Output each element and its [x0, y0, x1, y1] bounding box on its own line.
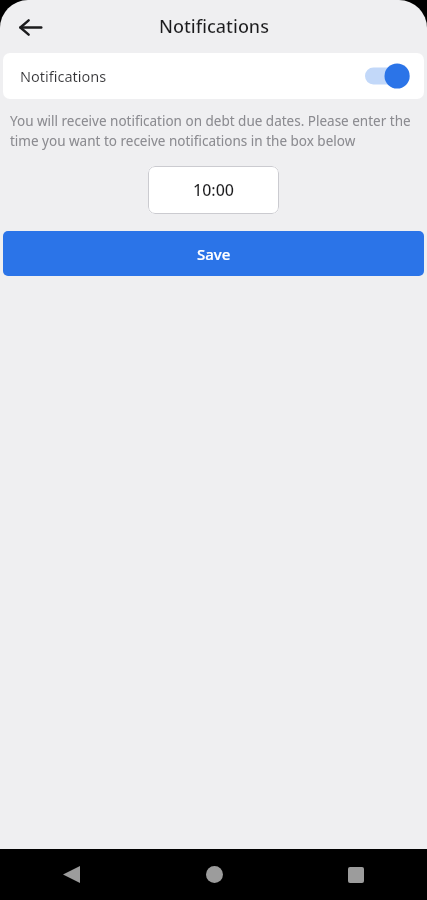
staticText: You will receive notification on debt du… — [10, 112, 415, 150]
button[interactable]: Save — [3, 231, 424, 276]
button[interactable]: 10:00 — [148, 166, 279, 214]
button[interactable]: Recent apps — [285, 849, 427, 900]
staticText: Notifications — [159, 14, 269, 39]
staticText: Notifications — [20, 66, 107, 86]
button[interactable]: Back — [0, 849, 143, 900]
staticText: 10:00 — [193, 179, 234, 201]
staticText: Save — [197, 244, 231, 264]
button[interactable]: Home — [143, 849, 285, 900]
button[interactable]: Notifications — [3, 53, 424, 99]
button[interactable]: Back — [8, 5, 52, 49]
